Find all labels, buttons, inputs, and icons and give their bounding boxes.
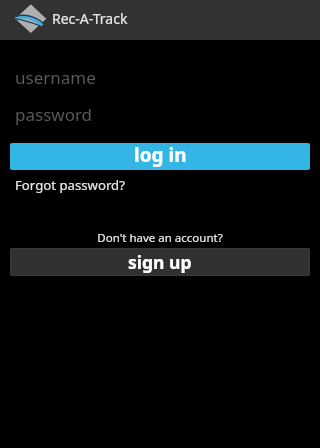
staticText: Rec-A-Track [52,9,128,28]
button[interactable]: Rec-A-Track home [0,0,48,40]
staticText: log in [134,143,187,168]
button[interactable]: password [0,100,320,130]
staticText: password [15,103,93,126]
button[interactable]: sign up [10,248,310,276]
staticText: sign up [128,250,192,274]
staticText: username [15,66,96,89]
button[interactable]: log in [10,143,310,170]
button[interactable]: Forgot password? [10,174,130,196]
staticText: Forgot password? [15,176,125,194]
button[interactable]: username [0,63,320,93]
staticText: Don't have an account? [0,230,320,246]
